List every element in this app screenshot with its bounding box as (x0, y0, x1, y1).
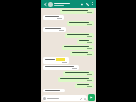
button[interactable] (63, 71, 94, 76)
button[interactable] (77, 39, 94, 44)
button[interactable] (43, 89, 65, 92)
button[interactable] (62, 45, 94, 50)
button[interactable] (75, 83, 94, 88)
button[interactable]: Video call (80, 2, 85, 7)
button[interactable]: Back (43, 2, 48, 7)
button[interactable]: More options (90, 2, 94, 6)
button[interactable]: Attach (42, 95, 87, 101)
button[interactable] (43, 15, 64, 20)
button[interactable] (43, 65, 79, 70)
button[interactable] (43, 57, 69, 64)
button[interactable] (58, 77, 94, 82)
button[interactable] (70, 51, 94, 56)
button[interactable]: Camera (83, 97, 86, 100)
button[interactable] (67, 21, 94, 26)
button[interactable]: Send (88, 94, 95, 101)
button[interactable] (60, 9, 94, 14)
button[interactable] (43, 27, 66, 32)
button[interactable]: Voice call (85, 2, 90, 7)
button[interactable] (65, 33, 94, 38)
button[interactable]: Attach (79, 97, 82, 100)
